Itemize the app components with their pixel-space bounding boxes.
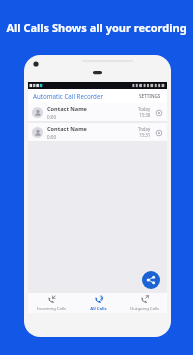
staticText: Today: [138, 126, 151, 132]
staticText: Contact Name: [47, 105, 87, 113]
button[interactable]: More options: [154, 108, 163, 117]
button[interactable]: SETTINGS: [138, 92, 162, 100]
staticText: All Calls: [90, 306, 107, 312]
staticText: Outgoing Calls: [130, 306, 159, 312]
staticText: Contact Name: [47, 125, 87, 133]
button[interactable]: Share: [142, 271, 160, 289]
button[interactable]: Outgoing Calls: [121, 293, 167, 313]
staticText: All Calls Shows all your recording: [6, 20, 187, 35]
staticText: 0:00: [47, 134, 57, 140]
staticText: Automatic Call Recorder: [33, 92, 103, 100]
button[interactable]: All Calls: [75, 293, 121, 313]
staticText: SETTINGS: [139, 93, 161, 99]
button[interactable]: Contact Name: [28, 103, 167, 121]
button[interactable]: Incoming Calls: [28, 293, 75, 313]
staticText: 15:31: [139, 132, 151, 138]
staticText: 0:00: [47, 114, 57, 120]
staticText: Today: [138, 106, 151, 112]
button[interactable]: More options: [154, 128, 163, 137]
staticText: 15:38: [139, 112, 151, 118]
button[interactable]: Contact Name: [28, 123, 167, 141]
staticText: Incoming Calls: [37, 306, 66, 312]
